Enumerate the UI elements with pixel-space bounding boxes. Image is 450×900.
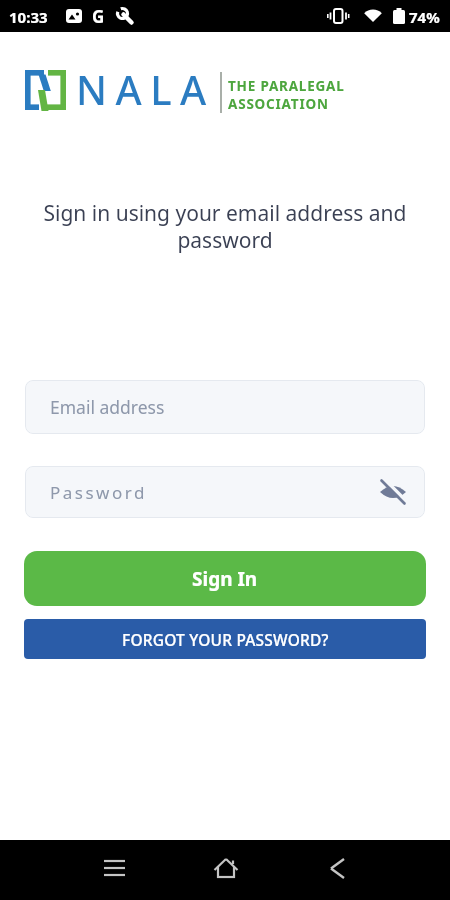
- button[interactable]: [379, 479, 407, 505]
- staticText: 74%: [409, 7, 440, 27]
- staticText: NALA: [76, 62, 215, 116]
- button[interactable]: [320, 850, 356, 886]
- staticText: THE PARALEGAL: [228, 77, 345, 95]
- button[interactable]: Email address: [25, 380, 425, 434]
- staticText: 10:33: [9, 7, 48, 27]
- button[interactable]: [97, 852, 133, 888]
- button[interactable]: FORGOT YOUR PASSWORD?: [24, 619, 426, 659]
- staticText: ASSOCIATION: [228, 95, 329, 113]
- button[interactable]: [208, 850, 244, 886]
- button[interactable]: Password: [25, 466, 425, 518]
- staticText: Sign in using your email address and pas…: [0, 199, 450, 254]
- staticText: Password: [50, 481, 147, 504]
- staticText: Email address: [50, 395, 165, 419]
- staticText: G: [92, 5, 105, 28]
- staticText: Sign In: [192, 566, 258, 592]
- staticText: FORGOT YOUR PASSWORD?: [122, 629, 329, 650]
- button[interactable]: Sign In: [24, 551, 426, 606]
